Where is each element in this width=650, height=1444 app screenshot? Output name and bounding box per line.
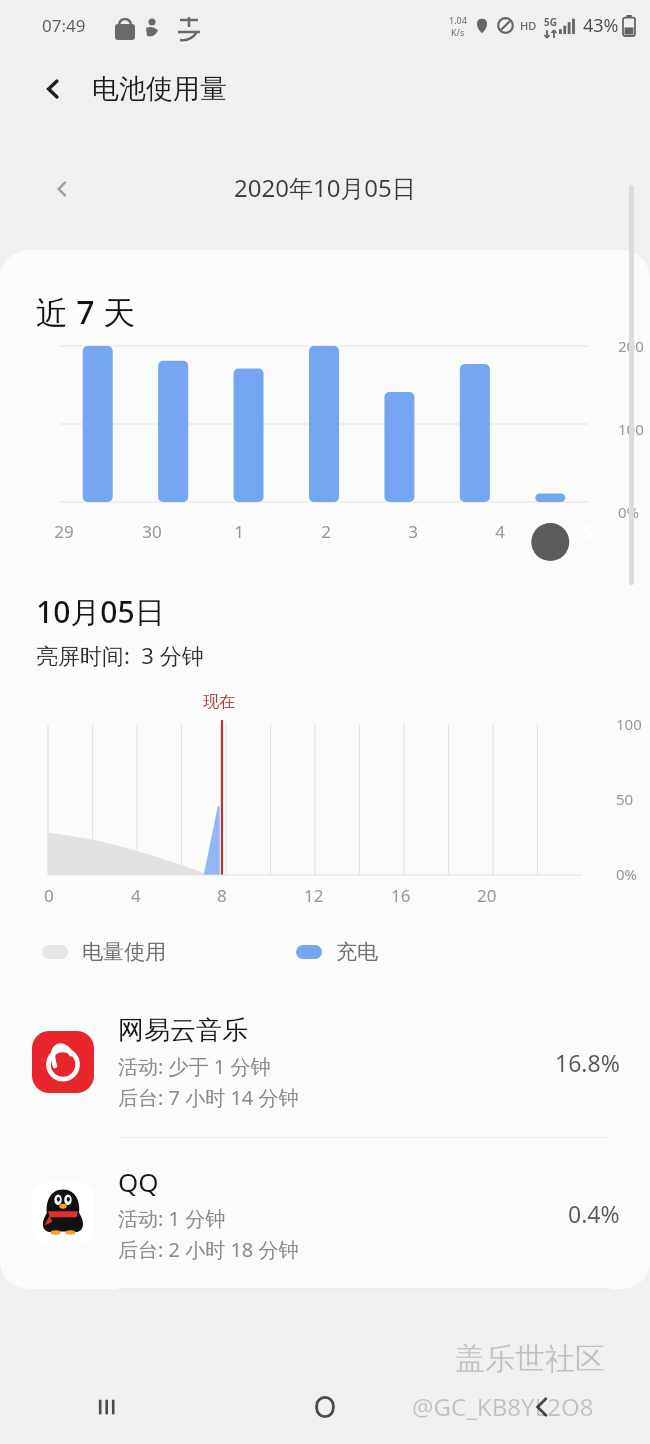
staticText: 亮屏时间: 3 分钟	[36, 640, 204, 670]
staticText: 电池使用量	[92, 72, 227, 106]
staticText: 活动: 少于 1 分钟	[118, 1053, 271, 1080]
staticText: 充电	[336, 939, 378, 965]
button[interactable]: Back	[433, 1370, 650, 1444]
staticText: 07:49	[42, 14, 86, 37]
staticText: 4	[131, 884, 141, 907]
staticText: @GC_KB8YL2O8	[412, 1390, 594, 1423]
staticText: 0%	[616, 864, 638, 884]
staticText: 12	[304, 884, 324, 907]
staticText: 5G	[544, 15, 557, 29]
staticText: 1.04	[449, 14, 467, 26]
button[interactable]: QQ	[0, 1138, 650, 1288]
staticText: 网易云音乐	[118, 1014, 248, 1047]
button[interactable]: Previous day	[36, 163, 88, 215]
staticText: 30	[142, 520, 162, 543]
staticText: 10月05日	[36, 591, 165, 632]
staticText: 200	[618, 336, 644, 356]
staticText: 盖乐世社区	[455, 1340, 605, 1378]
staticText: 29	[54, 520, 74, 543]
button[interactable]: Back	[28, 64, 78, 114]
staticText: 现在	[203, 692, 235, 712]
staticText: 3	[408, 520, 418, 543]
staticText: K/s	[451, 26, 465, 38]
staticText: 4	[495, 520, 505, 543]
staticText: 2	[321, 520, 331, 543]
staticText: 16	[391, 884, 411, 907]
staticText: HD	[520, 18, 537, 33]
staticText: QQ	[118, 1164, 159, 1199]
staticText: 1	[234, 520, 244, 543]
staticText: 20	[477, 884, 497, 907]
button[interactable]: Home	[216, 1370, 433, 1444]
staticText: 100	[616, 714, 642, 734]
button[interactable]: 网易云音乐	[0, 987, 650, 1137]
staticText: 16.8%	[555, 1047, 620, 1078]
staticText: 8	[217, 884, 227, 907]
staticText: 43%	[583, 13, 619, 38]
staticText: 后台: 7 小时 14 分钟	[118, 1084, 299, 1111]
staticText: 电量使用	[82, 939, 166, 965]
staticText: 50	[616, 789, 634, 809]
staticText: 0%	[618, 502, 640, 522]
button[interactable]: Recents	[0, 1370, 216, 1444]
staticText: 活动: 1 分钟	[118, 1205, 226, 1232]
staticText: 0	[44, 884, 54, 907]
staticText: 2020年10月05日	[234, 171, 416, 204]
staticText: 近 7 天	[36, 290, 135, 334]
staticText: 0.4%	[568, 1198, 620, 1229]
staticText: 100	[618, 419, 644, 439]
staticText: 后台: 2 小时 18 分钟	[118, 1236, 299, 1263]
